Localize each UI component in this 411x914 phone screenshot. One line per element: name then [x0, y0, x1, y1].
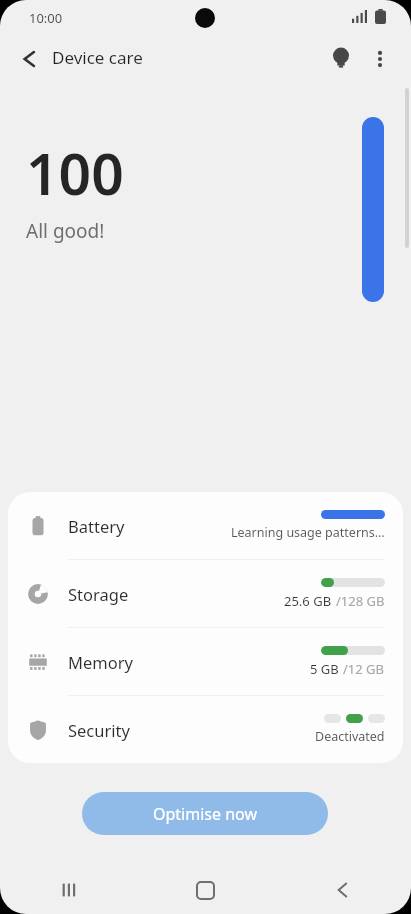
button[interactable]: Home	[137, 866, 274, 914]
staticText: Deactivated	[315, 728, 385, 745]
button[interactable]: Tips	[324, 42, 358, 76]
staticText: 25.6 GB	[284, 592, 332, 610]
button[interactable]: Storage	[8, 560, 403, 627]
button[interactable]: Recent apps	[0, 866, 137, 914]
staticText: /128 GB	[336, 592, 385, 610]
staticText: 100	[26, 134, 124, 212]
staticText: 5 GB	[310, 660, 339, 678]
staticText: Learning usage patterns…	[231, 524, 385, 541]
staticText: 10:00	[29, 9, 63, 27]
button[interactable]: Optimise now	[82, 792, 328, 835]
button[interactable]: Back	[14, 43, 46, 75]
button[interactable]: Memory	[8, 628, 403, 695]
staticText: Memory	[68, 651, 133, 673]
staticText: /12 GB	[343, 660, 385, 678]
staticText: Optimise now	[153, 803, 258, 825]
staticText: All good!	[26, 218, 105, 244]
button[interactable]: Battery	[8, 492, 403, 559]
staticText: Security	[68, 719, 130, 741]
button[interactable]: Security	[8, 696, 403, 763]
staticText: Battery	[68, 515, 125, 537]
staticText: Device care	[52, 46, 143, 69]
staticText: Storage	[68, 583, 129, 605]
button[interactable]: Back	[274, 866, 411, 914]
button[interactable]: More options	[363, 42, 397, 76]
